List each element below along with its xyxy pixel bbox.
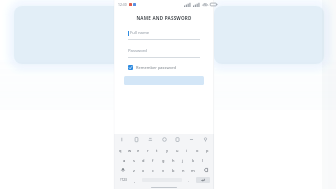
button[interactable]: z bbox=[129, 165, 138, 175]
button[interactable]: n bbox=[178, 165, 188, 175]
button[interactable]: Emoji bbox=[161, 136, 168, 143]
button[interactable]: w bbox=[125, 145, 134, 155]
staticText: r bbox=[147, 148, 149, 153]
button[interactable]: h bbox=[168, 155, 178, 165]
button[interactable]: u bbox=[172, 145, 182, 155]
staticText: x bbox=[142, 168, 145, 173]
staticText: g bbox=[162, 158, 165, 163]
staticText: m bbox=[191, 168, 195, 173]
staticText: . bbox=[188, 178, 190, 183]
staticText: u bbox=[176, 148, 179, 153]
button[interactable]: x bbox=[138, 165, 148, 175]
staticText: l bbox=[202, 158, 204, 163]
button[interactable]: k bbox=[188, 155, 198, 165]
button[interactable]: Sticker bbox=[174, 136, 181, 143]
button[interactable]: , bbox=[130, 175, 140, 185]
button[interactable]: Predictions bbox=[119, 136, 126, 143]
button[interactable]: s bbox=[129, 155, 138, 165]
button[interactable]: e bbox=[134, 145, 143, 155]
staticText: b bbox=[172, 168, 175, 173]
staticText: Full name bbox=[130, 30, 150, 36]
button[interactable]: Full name bbox=[128, 30, 200, 40]
staticText: h bbox=[172, 158, 175, 163]
staticText: Remember password bbox=[136, 65, 177, 70]
button[interactable]: a bbox=[120, 155, 129, 165]
staticText: ?123 bbox=[120, 178, 127, 182]
button[interactable]: Backspace bbox=[198, 165, 212, 175]
staticText: a bbox=[123, 158, 126, 163]
staticText: z bbox=[133, 168, 135, 173]
staticText: w bbox=[128, 148, 132, 153]
button[interactable]: l bbox=[198, 155, 208, 165]
staticText: v bbox=[162, 168, 165, 173]
button[interactable]: r bbox=[143, 145, 152, 155]
button[interactable]: m bbox=[188, 165, 198, 175]
button[interactable]: j bbox=[178, 155, 188, 165]
button[interactable]: b bbox=[168, 165, 178, 175]
button[interactable]: Password bbox=[128, 48, 200, 58]
button[interactable]: t bbox=[152, 145, 162, 155]
button[interactable]: Enter bbox=[196, 177, 210, 183]
staticText: e bbox=[137, 148, 140, 153]
staticText: d bbox=[142, 158, 145, 163]
button[interactable]: d bbox=[138, 155, 148, 165]
button[interactable]: Clipboard bbox=[133, 136, 140, 143]
staticText: q bbox=[119, 148, 122, 153]
staticText: o bbox=[196, 148, 199, 153]
staticText: , bbox=[134, 178, 136, 183]
button[interactable]: c bbox=[148, 165, 158, 175]
staticText: y bbox=[166, 148, 169, 153]
button[interactable]: v bbox=[158, 165, 168, 175]
staticText: k bbox=[192, 158, 195, 163]
button[interactable]: Shift bbox=[116, 165, 129, 175]
staticText: t bbox=[156, 148, 158, 153]
staticText: NAME AND PASSWORD bbox=[122, 15, 206, 21]
button[interactable]: g bbox=[158, 155, 168, 165]
staticText: s bbox=[133, 158, 135, 163]
button[interactable]: Remember password bbox=[128, 65, 200, 70]
staticText: 12:30 bbox=[118, 2, 127, 7]
staticText: n bbox=[182, 168, 185, 173]
button[interactable]: y bbox=[162, 145, 172, 155]
button[interactable]: q bbox=[116, 145, 125, 155]
button[interactable]: o bbox=[192, 145, 202, 155]
button[interactable]: f bbox=[148, 155, 158, 165]
button[interactable]: ?123 bbox=[116, 175, 130, 185]
button[interactable]: i bbox=[182, 145, 192, 155]
staticText: f bbox=[152, 158, 154, 163]
staticText: Password bbox=[128, 48, 147, 54]
staticText: p bbox=[206, 148, 209, 153]
staticText: j bbox=[182, 158, 184, 163]
button[interactable]: p bbox=[202, 145, 212, 155]
staticText: i bbox=[186, 148, 188, 153]
button[interactable]: Translate bbox=[147, 136, 154, 143]
staticText: c bbox=[152, 168, 154, 173]
button[interactable]: More bbox=[188, 136, 195, 143]
button[interactable]: Settings bbox=[202, 136, 209, 143]
